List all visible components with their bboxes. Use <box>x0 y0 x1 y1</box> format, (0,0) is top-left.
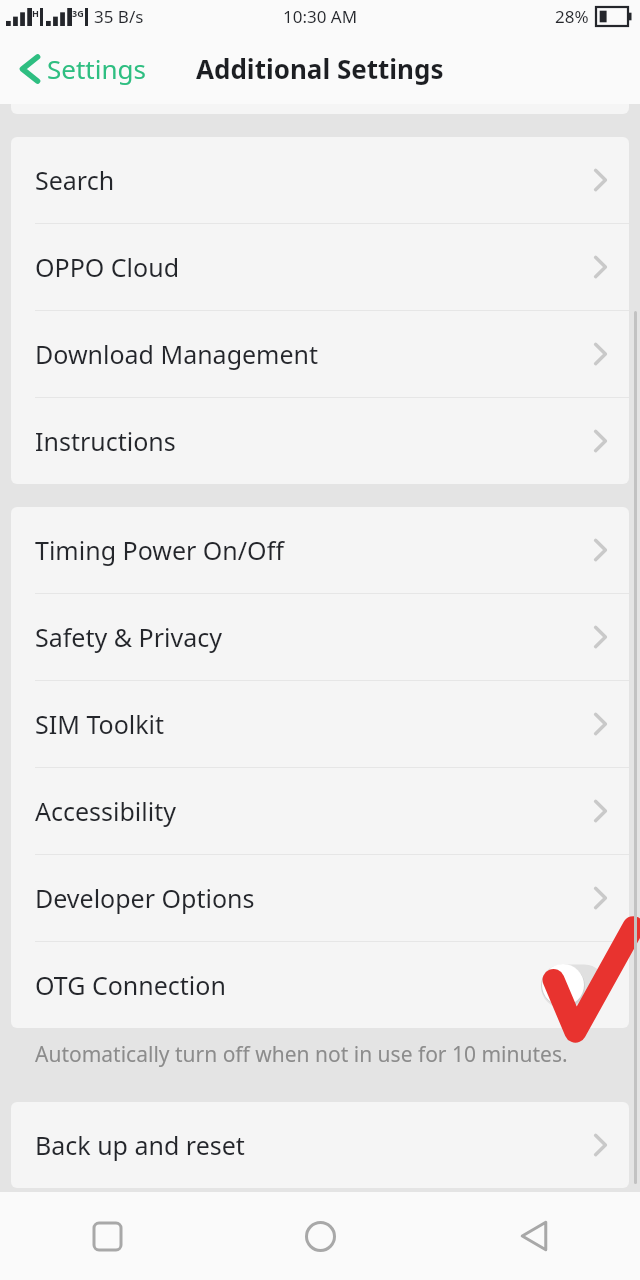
staticText: OPPO Cloud <box>35 250 594 284</box>
button[interactable]: Back <box>427 1192 640 1280</box>
button[interactable]: Back up and reset <box>11 1102 629 1188</box>
staticText: Back up and reset <box>35 1128 594 1162</box>
staticText: 35 B/s <box>94 5 144 28</box>
staticText: Download Management <box>35 337 594 371</box>
button[interactable]: Home <box>214 1192 427 1280</box>
staticText: Search <box>35 163 594 197</box>
button[interactable]: Accessibility <box>11 768 629 854</box>
button[interactable]: Instructions <box>11 398 629 484</box>
staticText: Instructions <box>35 424 594 458</box>
staticText: Additional Settings <box>196 51 444 86</box>
button[interactable]: SIM Toolkit <box>11 681 629 767</box>
staticText: SIM Toolkit <box>35 707 594 741</box>
staticText: Timing Power On/Off <box>35 533 594 567</box>
button[interactable]: Timing Power On/Off <box>11 507 629 593</box>
button[interactable]: OPPO Cloud <box>11 224 629 310</box>
staticText: OTG Connection <box>35 968 541 1002</box>
button[interactable]: Safety & Privacy <box>11 594 629 680</box>
button[interactable]: Recent apps <box>0 1192 214 1280</box>
staticText: Accessibility <box>35 794 594 828</box>
staticText: 10:30 AM <box>283 5 358 28</box>
button[interactable]: Download Management <box>11 311 629 397</box>
staticText: H <box>32 7 39 19</box>
staticText: Safety & Privacy <box>35 620 594 654</box>
staticText: Settings <box>47 51 146 86</box>
staticText: 28% <box>555 5 589 28</box>
staticText: Automatically turn off when not in use f… <box>35 1040 568 1069</box>
button[interactable]: Developer Options <box>11 855 629 941</box>
staticText: 3G <box>72 7 84 19</box>
staticText: Developer Options <box>35 881 594 915</box>
button[interactable]: Search <box>11 137 629 223</box>
button[interactable]: Settings <box>12 45 154 92</box>
other: OTG Connection toggle, off <box>541 963 605 1007</box>
button[interactable]: OTG Connection <box>11 942 629 1028</box>
